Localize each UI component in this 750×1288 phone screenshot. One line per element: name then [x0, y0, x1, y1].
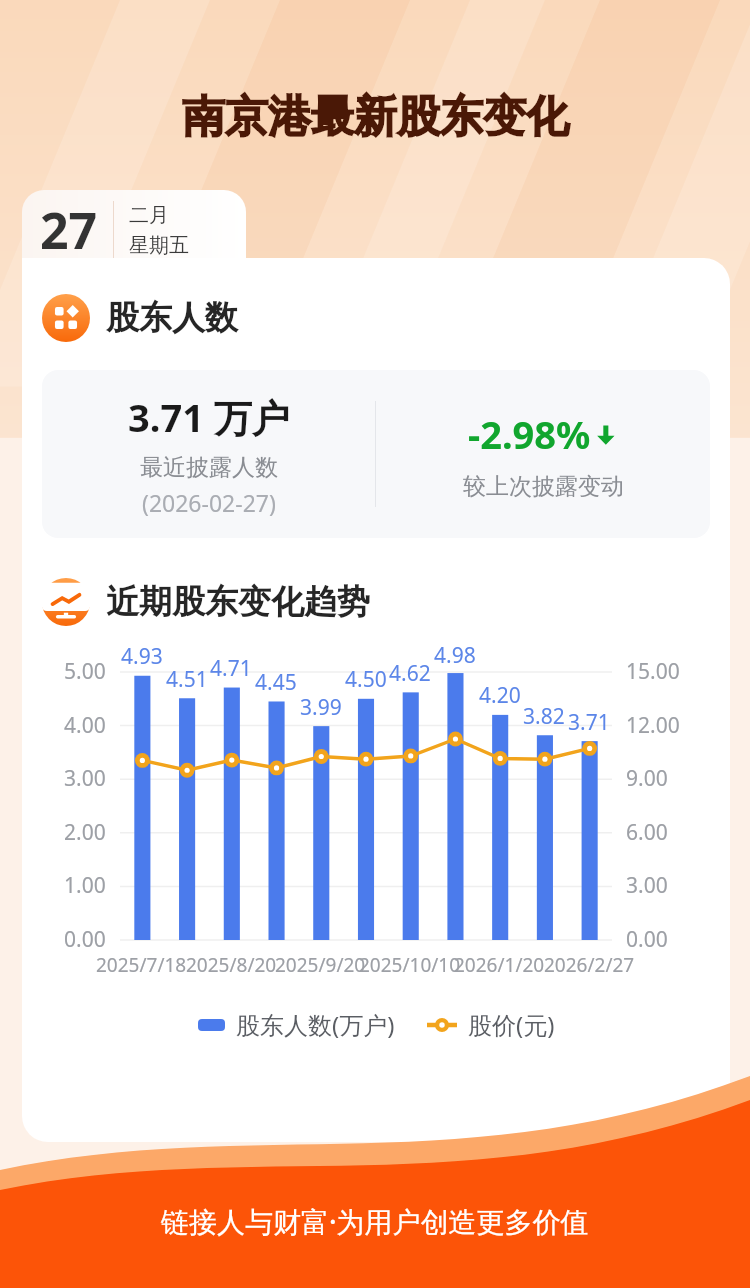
staticText: 3.71 万户	[128, 391, 290, 443]
staticText: 3.99	[300, 693, 342, 722]
staticText: 最近披露人数	[140, 453, 278, 482]
staticText: 2025/9/20	[275, 952, 366, 978]
staticText: 4.50	[345, 665, 387, 694]
staticText: 股价(元)	[468, 1008, 555, 1041]
staticText: 27	[40, 196, 98, 264]
staticText: 2026/1/20	[454, 952, 545, 978]
staticText: 4.71	[210, 654, 252, 683]
staticText: 2025/8/20	[186, 952, 277, 978]
staticText: 0.00	[626, 925, 668, 954]
staticText: 4.62	[389, 659, 431, 688]
staticText: (2026-02-27)	[142, 487, 276, 518]
staticText: 2.00	[64, 818, 106, 847]
staticText: 2026/2/27	[544, 952, 635, 978]
other: 股东人数	[42, 294, 90, 342]
staticText: 近期股东变化趋势	[106, 581, 370, 623]
staticText: 1.00	[64, 871, 106, 900]
staticText: 南京港最新股东变化	[182, 90, 569, 144]
button[interactable]: 股东人数	[42, 294, 238, 342]
staticText: 2025/7/18	[96, 952, 187, 978]
staticText: 6.00	[626, 818, 668, 847]
staticText: 2025/10/10	[359, 952, 461, 978]
staticText: 9.00	[626, 764, 668, 793]
staticText: 4.51	[166, 665, 208, 694]
staticText: 4.00	[64, 711, 106, 740]
staticText: 股东人数(万户)	[236, 1008, 395, 1041]
staticText: 3.82	[523, 702, 565, 731]
staticText: 4.45	[255, 668, 297, 697]
button[interactable]: 近期股东变化趋势	[42, 578, 370, 626]
staticText: 3.00	[626, 871, 668, 900]
staticText: 15.00	[626, 657, 680, 686]
staticText: 二月	[129, 203, 169, 228]
other: 近期股东变化趋势	[42, 578, 90, 626]
staticText: 4.98	[434, 641, 476, 670]
staticText: 较上次披露变动	[463, 472, 624, 501]
staticText: 12.00	[626, 711, 680, 740]
staticText: 4.93	[121, 642, 163, 671]
staticText: 0.00	[64, 925, 106, 954]
staticText: 5.00	[64, 657, 106, 686]
staticText: 星期五	[129, 233, 189, 258]
staticText: 股东人数	[106, 297, 238, 339]
staticText: -2.98%	[468, 408, 591, 460]
staticText: 链接人与财富·为用户创造更多价值	[161, 1202, 589, 1240]
staticText: 3.00	[64, 764, 106, 793]
staticText: 3.71	[568, 708, 610, 737]
staticText: 4.20	[479, 681, 521, 710]
